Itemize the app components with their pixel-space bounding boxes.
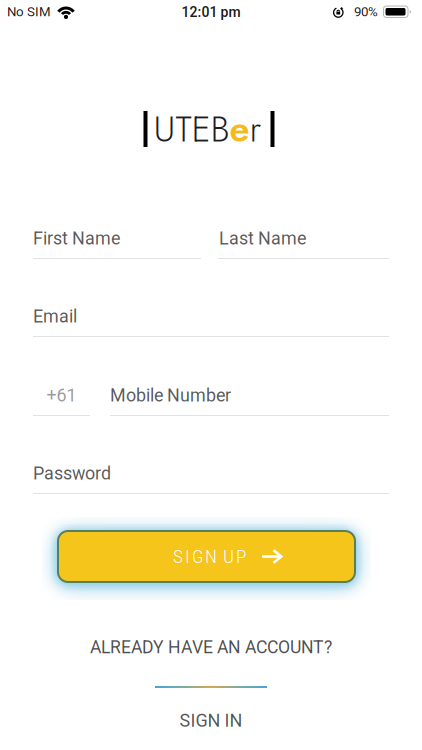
staticText: Email <box>33 306 77 327</box>
staticText: 12:01 pm <box>181 4 240 20</box>
staticText: SIGN IN <box>179 710 242 731</box>
staticText: r <box>249 103 261 155</box>
staticText: S I G N U P <box>173 546 246 567</box>
staticText: UTEB <box>153 103 229 155</box>
staticText: ALREADY HAVE AN ACCOUNT? <box>90 637 332 658</box>
staticText: No SIM <box>7 4 51 20</box>
staticText: Last Name <box>219 228 306 249</box>
staticText: Mobile Number <box>110 385 231 406</box>
staticText: Password <box>33 463 111 484</box>
staticText: e <box>229 103 249 155</box>
staticText: First Name <box>33 228 120 249</box>
staticText: 90% <box>354 4 378 20</box>
staticText: +61 <box>46 385 76 406</box>
